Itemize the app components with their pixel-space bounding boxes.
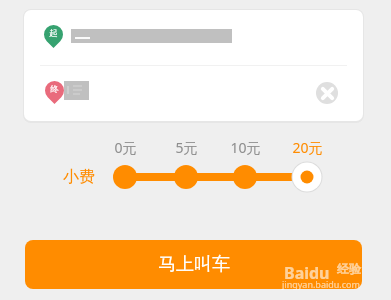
button[interactable]: 0元 [101, 138, 149, 156]
staticText: 马上叫车 [158, 253, 230, 276]
button[interactable]: Clear destination [316, 82, 338, 104]
staticText: 20元 [292, 138, 323, 156]
staticText: Baidu [284, 262, 330, 284]
staticText: 小费 [63, 167, 95, 187]
button[interactable]: 10元 [221, 138, 269, 156]
button[interactable]: Set pick-up location [24, 10, 363, 65]
button[interactable]: 20元 [283, 138, 331, 156]
staticText: jingyan.baidu.com [282, 278, 360, 290]
button[interactable]: 5元 [162, 138, 210, 156]
staticText: 起 [49, 28, 58, 39]
staticText: 0元 [114, 138, 137, 156]
button[interactable]: Set destination [24, 66, 363, 120]
staticText: 10元 [230, 138, 261, 156]
staticText: 5元 [175, 138, 198, 156]
staticText: 终 [50, 84, 59, 95]
staticText: 经验 [337, 261, 361, 276]
button[interactable]: 马上叫车 [25, 240, 362, 289]
